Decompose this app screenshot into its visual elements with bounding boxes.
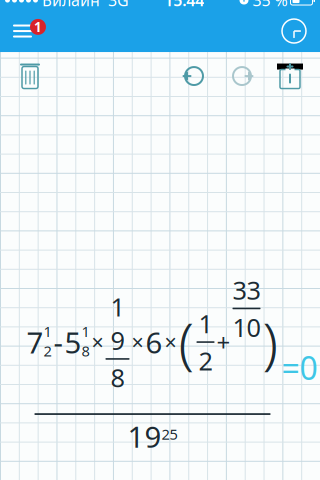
staticText: -: [53, 323, 62, 362]
button[interactable]: History: [274, 14, 314, 48]
staticText: 12: [43, 322, 51, 361]
staticText: 19: [110, 290, 124, 357]
staticText: 35 %: [248, 0, 287, 11]
staticText: 1: [34, 18, 42, 36]
staticText: 25: [161, 424, 177, 444]
staticText: 15:44: [164, 0, 204, 11]
button[interactable]: Share: [266, 53, 314, 99]
staticText: 8: [110, 361, 124, 394]
staticText: 10: [232, 310, 260, 344]
button[interactable]: Redo: [218, 53, 266, 99]
button[interactable]: Menu: [6, 14, 50, 48]
staticText: 5: [64, 323, 81, 362]
staticText: +: [216, 326, 230, 358]
button[interactable]: Delete: [6, 53, 54, 99]
staticText: 3G: [100, 0, 129, 11]
staticText: 6: [145, 323, 162, 362]
staticText: 2: [198, 344, 212, 377]
staticText: =0: [281, 346, 317, 389]
staticText: ×: [91, 328, 103, 356]
staticText: 7: [26, 323, 43, 362]
staticText: ×: [131, 328, 143, 356]
staticText: 1: [198, 307, 212, 340]
staticText: 18: [81, 322, 89, 361]
staticText: 33: [232, 273, 260, 307]
staticText: 19: [127, 417, 161, 456]
staticText: ×: [164, 328, 176, 356]
button[interactable]: Undo: [170, 53, 218, 99]
staticText: (: [178, 305, 194, 379]
staticText: Билайн: [38, 0, 100, 11]
staticText: ): [262, 305, 278, 379]
